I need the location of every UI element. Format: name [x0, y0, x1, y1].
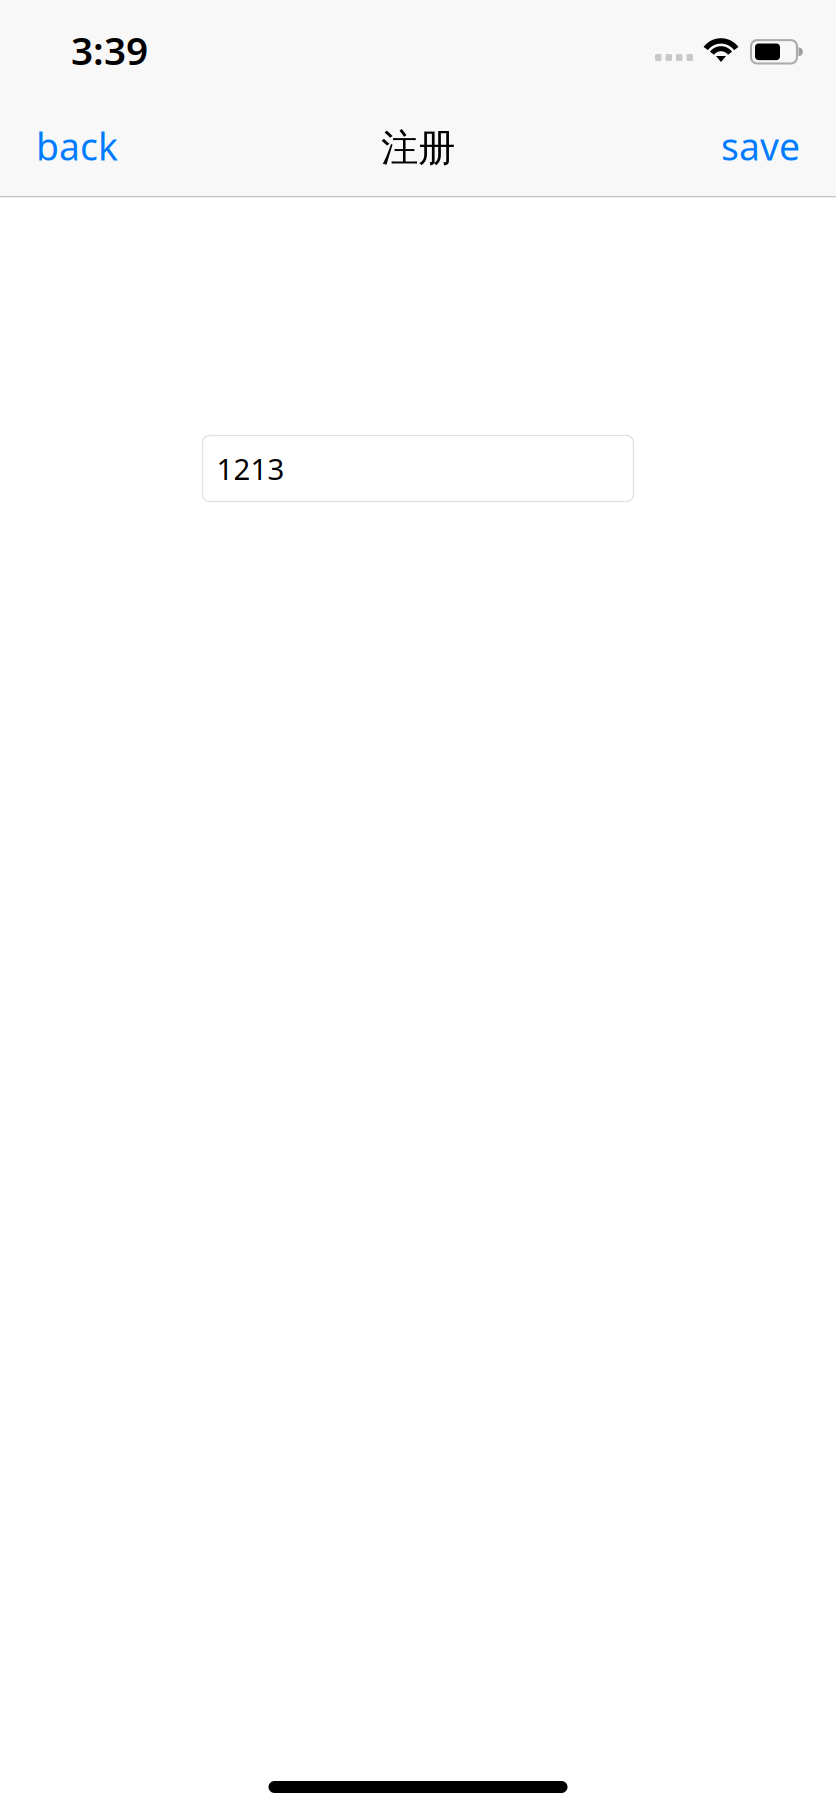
- staticText: 注册: [381, 125, 455, 171]
- staticText: back: [36, 121, 118, 171]
- button[interactable]: save: [685, 105, 836, 187]
- button[interactable]: back: [0, 105, 154, 187]
- staticText: 3:39: [71, 24, 148, 76]
- staticText: 1213: [216, 449, 284, 488]
- staticText: save: [721, 121, 800, 171]
- button[interactable]: 1213: [202, 435, 633, 501]
